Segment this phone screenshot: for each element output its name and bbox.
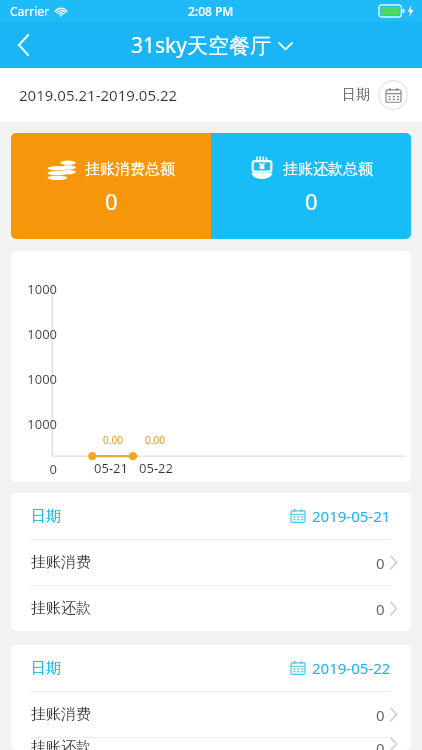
button[interactable]: 日期 bbox=[342, 80, 408, 110]
staticText: 0.00 bbox=[92, 433, 134, 447]
button[interactable]: 挂账消费总额 bbox=[11, 133, 211, 239]
staticText: 1000 bbox=[15, 325, 57, 343]
staticText: 挂账还款总额 bbox=[283, 160, 373, 179]
staticText: 0 bbox=[15, 460, 57, 478]
staticText: 挂账还款 bbox=[31, 599, 91, 618]
staticText: 日期 bbox=[342, 86, 370, 104]
staticText: 2019-05-21 bbox=[312, 506, 391, 526]
button[interactable]: Back bbox=[0, 22, 46, 68]
button[interactable]: 挂账消费 bbox=[11, 540, 411, 585]
button[interactable]: 日期 bbox=[11, 645, 411, 691]
staticText: 0 bbox=[376, 599, 385, 619]
button[interactable]: 挂账还款 bbox=[11, 738, 411, 750]
staticText: 日期 bbox=[31, 507, 61, 526]
staticText: 挂账还款 bbox=[31, 738, 91, 750]
staticText: 2019-05-22 bbox=[312, 658, 391, 678]
button[interactable]: 日期 bbox=[11, 493, 411, 539]
staticText: 0 bbox=[105, 186, 118, 216]
button[interactable]: 31sky天空餐厅 bbox=[131, 31, 292, 60]
staticText: 0 bbox=[376, 738, 385, 750]
staticText: 挂账消费总额 bbox=[85, 160, 175, 179]
staticText: 31sky天空餐厅 bbox=[131, 31, 272, 60]
staticText: 0 bbox=[376, 553, 385, 573]
button[interactable]: 挂账消费 bbox=[11, 692, 411, 737]
staticText: 2:08 PM bbox=[188, 3, 234, 19]
staticText: Carrier bbox=[10, 3, 50, 19]
staticText: 0.00 bbox=[134, 433, 176, 447]
staticText: 挂账消费 bbox=[31, 553, 91, 572]
staticText: 挂账消费 bbox=[31, 705, 91, 724]
staticText: 0 bbox=[305, 186, 318, 216]
staticText: 05-22 bbox=[134, 459, 178, 477]
staticText: 2019.05.21-2019.05.22 bbox=[19, 85, 178, 105]
staticText: 05-21 bbox=[89, 459, 133, 477]
button[interactable]: 挂账还款总额 bbox=[211, 133, 411, 239]
staticText: 1000 bbox=[15, 415, 57, 433]
staticText: 日期 bbox=[31, 659, 61, 678]
staticText: 1000 bbox=[15, 370, 57, 388]
staticText: 1000 bbox=[15, 280, 57, 298]
staticText: 0 bbox=[376, 705, 385, 725]
button[interactable]: 挂账还款 bbox=[11, 586, 411, 631]
